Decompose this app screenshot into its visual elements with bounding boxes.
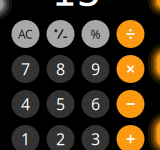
staticText: 9 <box>91 58 100 80</box>
button[interactable]: Plus or minus <box>46 20 74 48</box>
button[interactable]: 6 <box>81 90 109 118</box>
staticText: 7 <box>21 58 30 80</box>
button[interactable]: Divide <box>116 20 144 48</box>
button[interactable]: Subtract <box>116 90 144 118</box>
staticText: 5 <box>56 93 65 115</box>
button[interactable]: 5 <box>46 90 74 118</box>
button[interactable]: AC <box>11 20 39 48</box>
staticText: 6 <box>91 93 100 115</box>
button[interactable]: Add <box>116 125 144 150</box>
staticText: 4 <box>21 93 30 115</box>
button[interactable]: 1 <box>11 125 39 150</box>
button[interactable]: Multiply <box>116 55 144 83</box>
button[interactable]: 7 <box>11 55 39 83</box>
button[interactable]: 2 <box>46 125 74 150</box>
staticText: % <box>90 26 100 42</box>
button[interactable]: % <box>81 20 109 48</box>
staticText: AC <box>18 26 33 42</box>
button[interactable]: 8 <box>46 55 74 83</box>
staticText: 8 <box>56 58 65 80</box>
button[interactable]: 4 <box>11 90 39 118</box>
button[interactable]: 9 <box>81 55 109 83</box>
staticText: 15 <box>51 0 101 15</box>
staticText: 2 <box>56 128 65 150</box>
button[interactable]: 3 <box>81 125 109 150</box>
staticText: 1 <box>21 128 30 150</box>
staticText: 3 <box>91 128 100 150</box>
